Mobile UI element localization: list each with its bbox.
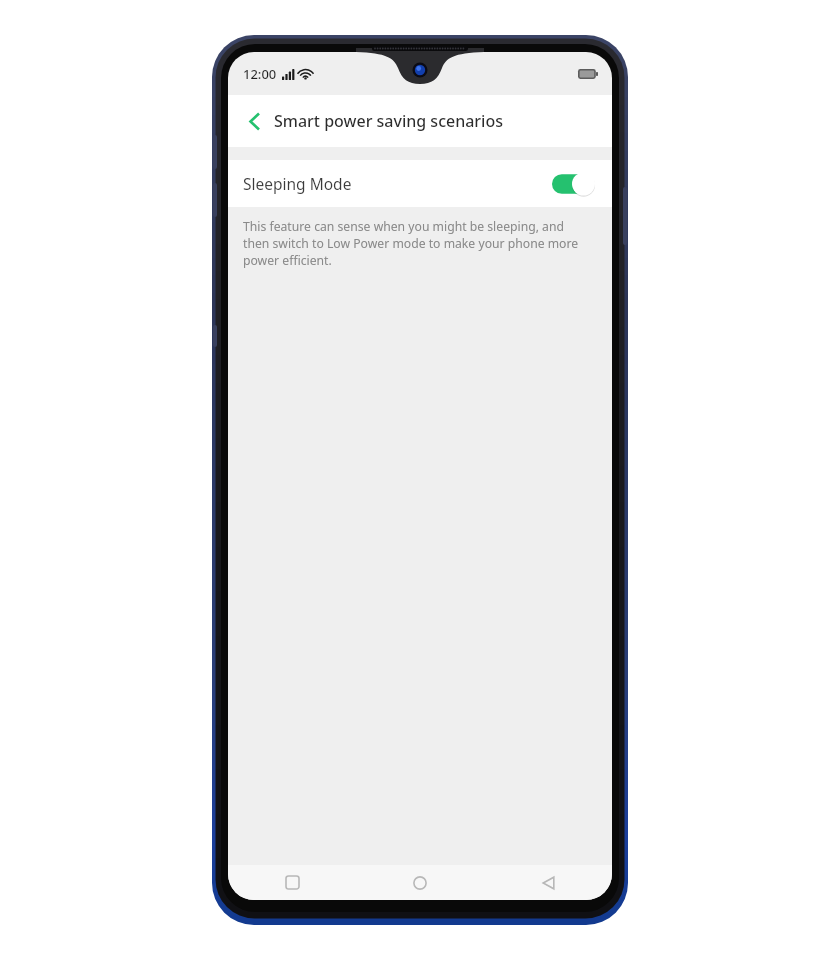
- staticText: Smart power saving scenarios: [274, 110, 503, 132]
- staticText: This feature can sense when you might be…: [243, 218, 590, 269]
- button[interactable]: Sleeping Mode toggle, on: [552, 172, 596, 196]
- button[interactable]: Home: [356, 865, 484, 900]
- button[interactable]: Sleeping Mode: [228, 160, 612, 207]
- button[interactable]: Back: [236, 103, 272, 139]
- button[interactable]: Recent apps: [228, 865, 356, 900]
- button[interactable]: Back: [484, 865, 612, 900]
- staticText: Sleeping Mode: [243, 173, 352, 194]
- staticText: 12:00: [243, 65, 277, 83]
